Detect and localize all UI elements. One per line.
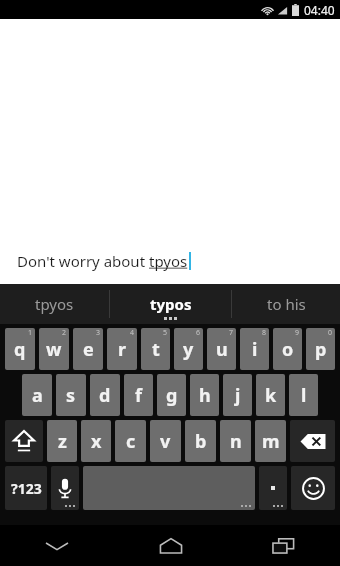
staticText: y: [183, 337, 194, 362]
staticText: p: [315, 337, 327, 362]
button[interactable]: c: [115, 420, 146, 462]
button[interactable]: f: [124, 374, 153, 416]
staticText: a: [32, 383, 43, 408]
button[interactable]: Voice input: [51, 466, 79, 510]
staticText: 4: [130, 328, 135, 338]
button[interactable]: h: [190, 374, 219, 416]
staticText: r: [118, 337, 127, 362]
button[interactable]: d: [90, 374, 120, 416]
staticText: to his: [267, 294, 306, 314]
button[interactable]: j: [223, 374, 252, 416]
staticText: m: [262, 429, 280, 454]
button[interactable]: r: [107, 328, 137, 370]
button[interactable]: Hide keyboard: [0, 525, 114, 566]
button[interactable]: v: [150, 420, 181, 462]
staticText: u: [216, 337, 228, 362]
staticText: typos: [150, 294, 192, 314]
button[interactable]: u: [207, 328, 236, 370]
button[interactable]: Shift: [5, 420, 43, 462]
button[interactable]: m: [255, 420, 286, 462]
staticText: 1: [28, 328, 33, 338]
button[interactable]: b: [185, 420, 216, 462]
staticText: q: [14, 337, 26, 362]
staticText: f: [135, 383, 142, 408]
staticText: w: [46, 337, 62, 362]
button[interactable]: s: [56, 374, 86, 416]
staticText: s: [66, 383, 76, 408]
staticText: 9: [295, 328, 300, 338]
button[interactable]: Home: [114, 525, 227, 566]
button[interactable]: y: [174, 328, 203, 370]
staticText: t: [152, 337, 160, 362]
staticText: tpyos: [35, 294, 74, 314]
button[interactable]: k: [256, 374, 285, 416]
staticText: 2: [62, 328, 67, 338]
button[interactable]: Recent apps: [227, 525, 340, 566]
staticText: d: [99, 383, 111, 408]
button[interactable]: g: [157, 374, 186, 416]
button[interactable]: Backspace: [290, 420, 335, 462]
staticText: g: [166, 383, 178, 408]
button[interactable]: t: [141, 328, 170, 370]
staticText: 7: [229, 328, 234, 338]
button[interactable]: [259, 466, 287, 510]
staticText: z: [58, 429, 67, 454]
button[interactable]: p: [306, 328, 335, 370]
button[interactable]: i: [240, 328, 269, 370]
staticText: e: [83, 337, 94, 362]
staticText: 0: [328, 328, 333, 338]
staticText: 3: [96, 328, 101, 338]
staticText: c: [126, 429, 136, 454]
button[interactable]: l: [289, 374, 318, 416]
button[interactable]: to his: [232, 284, 340, 324]
button[interactable]: o: [273, 328, 302, 370]
staticText: 5: [163, 328, 168, 338]
staticText: tpyos: [149, 251, 188, 271]
button[interactable]: a: [22, 374, 52, 416]
staticText: n: [230, 429, 242, 454]
staticText: b: [195, 429, 207, 454]
button[interactable]: w: [39, 328, 69, 370]
staticText: 04:40: [304, 2, 335, 18]
button[interactable]: Space: [83, 466, 255, 510]
staticText: k: [265, 383, 277, 408]
staticText: h: [199, 383, 211, 408]
staticText: l: [301, 383, 307, 408]
staticText: x: [91, 429, 102, 454]
staticText: ?123: [11, 479, 42, 498]
staticText: 8: [262, 328, 267, 338]
staticText: o: [282, 337, 294, 362]
staticText: Don't worry about: [17, 251, 149, 271]
button[interactable]: Emoji: [291, 466, 335, 510]
staticText: i: [252, 337, 258, 362]
button[interactable]: e: [73, 328, 103, 370]
button[interactable]: typos: [110, 284, 231, 324]
button[interactable]: q: [5, 328, 35, 370]
button[interactable]: x: [81, 420, 111, 462]
staticText: v: [160, 429, 171, 454]
staticText: 6: [196, 328, 201, 338]
button[interactable]: tpyos: [0, 284, 109, 324]
staticText: j: [235, 383, 241, 408]
button[interactable]: ?123: [5, 466, 47, 510]
button[interactable]: z: [47, 420, 77, 462]
button[interactable]: n: [220, 420, 251, 462]
